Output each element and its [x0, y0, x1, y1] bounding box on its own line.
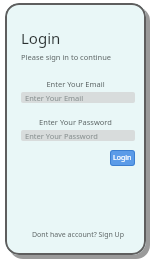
- staticText: Please sign in to continue: [21, 52, 112, 62]
- staticText: Enter Your Password: [21, 117, 130, 127]
- staticText: Enter Your Password: [25, 131, 98, 141]
- button[interactable]: Enter Your Password: [21, 130, 135, 141]
- staticText: Enter Your Email: [21, 79, 130, 89]
- staticText: Enter Your Email: [25, 93, 84, 103]
- staticText: Login: [113, 153, 132, 163]
- staticText: Login: [21, 28, 61, 48]
- button[interactable]: Enter Your Email: [21, 92, 135, 103]
- button[interactable]: Login: [110, 150, 135, 166]
- button[interactable]: Dont have account? Sign Up: [30, 228, 127, 242]
- staticText: Dont have account? Sign Up: [32, 230, 125, 240]
